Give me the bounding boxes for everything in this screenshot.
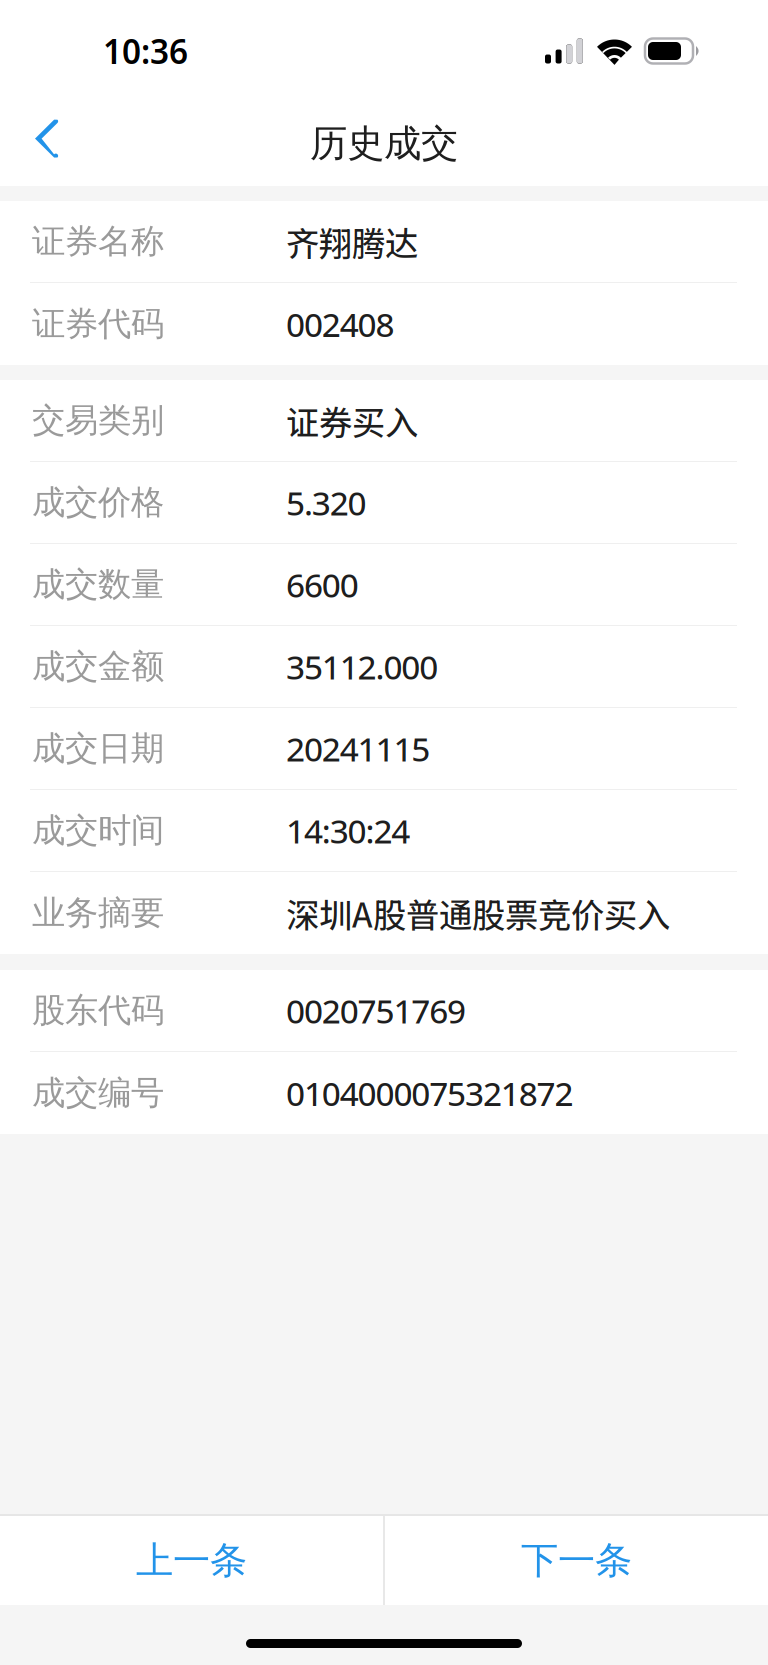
button[interactable]: Back — [0, 92, 93, 186]
staticText: 交易类别 — [32, 400, 164, 441]
staticText: 齐翔腾达 — [286, 217, 418, 266]
staticText: 成交金额 — [32, 646, 164, 687]
staticText: 成交编号 — [32, 1072, 164, 1113]
staticText: 成交日期 — [32, 728, 164, 769]
staticText: 10:36 — [103, 29, 188, 73]
staticText: 14:30:24 — [286, 808, 410, 853]
staticText: 证券代码 — [32, 303, 164, 344]
staticText: 业务摘要 — [32, 892, 164, 933]
staticText: 历史成交 — [310, 121, 458, 166]
staticText: 成交数量 — [32, 564, 164, 605]
staticText: 证券买入 — [286, 396, 418, 445]
staticText: 成交价格 — [32, 482, 164, 523]
button[interactable]: 上一条 — [0, 1516, 383, 1605]
staticText: 上一条 — [136, 1538, 247, 1583]
staticText: 002408 — [286, 301, 394, 347]
staticText: 20241115 — [286, 726, 430, 771]
staticText: 证券名称 — [32, 221, 164, 262]
staticText: 深圳A股普通股票竞价买入 — [286, 889, 670, 937]
staticText: 下一条 — [521, 1538, 632, 1583]
staticText: 0020751769 — [286, 988, 466, 1033]
staticText: 35112.000 — [286, 644, 438, 689]
staticText: 0104000075321872 — [286, 1070, 573, 1116]
staticText: 5.320 — [286, 480, 367, 525]
staticText: 成交时间 — [32, 810, 164, 851]
staticText: 6600 — [286, 562, 359, 607]
button[interactable]: 下一条 — [385, 1516, 768, 1605]
staticText: 股东代码 — [32, 990, 164, 1031]
